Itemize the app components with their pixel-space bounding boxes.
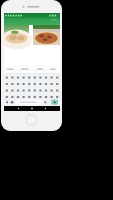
button[interactable] — [4, 25, 29, 45]
button[interactable] — [33, 25, 60, 45]
button[interactable]: App bar — [4, 13, 60, 25]
button[interactable]: Navigation bar — [4, 106, 60, 111]
